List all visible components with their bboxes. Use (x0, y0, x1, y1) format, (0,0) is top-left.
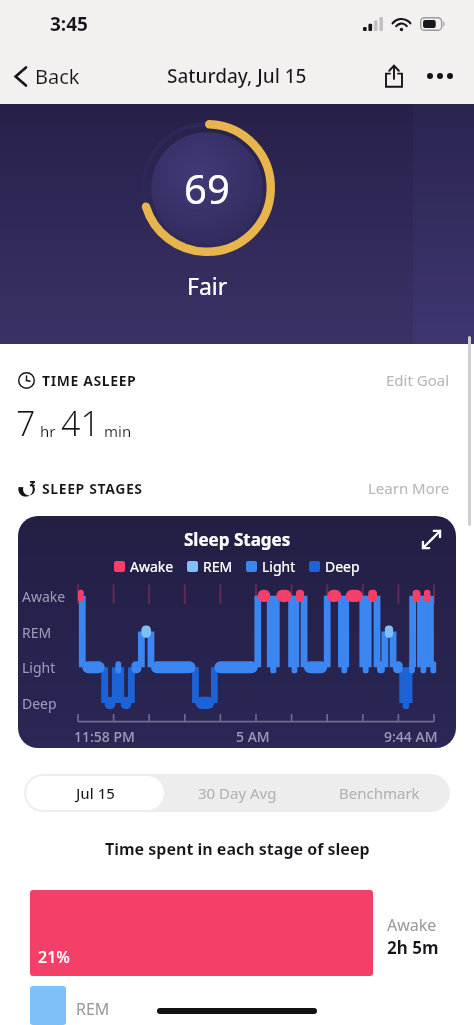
staticText: Fair (187, 270, 228, 301)
button[interactable]: Learn More (364, 474, 454, 502)
button[interactable]: Share (372, 54, 416, 98)
staticText: Awake (22, 587, 66, 606)
staticText: 11:58 PM (74, 727, 135, 746)
staticText: 41 (61, 400, 100, 446)
staticText: 9:44 AM (384, 727, 438, 746)
staticText: Learn More (368, 478, 450, 498)
staticText: Back (35, 63, 80, 90)
staticText: TIME ASLEEP (42, 371, 137, 390)
staticText: REM (76, 998, 110, 1020)
button[interactable]: Back (0, 55, 94, 98)
staticText: 7 (16, 400, 36, 446)
button[interactable]: Jul 15 (26, 776, 164, 810)
staticText: Time spent in each stage of sleep (105, 838, 370, 860)
staticText: min (104, 421, 132, 441)
staticText: Saturday, Jul 15 (167, 63, 307, 89)
staticText: 3:45 (50, 11, 88, 37)
staticText: Jul 15 (76, 783, 115, 803)
button[interactable]: REM (0, 986, 474, 1025)
staticText: Sleep Stages (184, 528, 291, 551)
staticText: SLEEP STAGES (42, 479, 143, 498)
button[interactable]: Benchmark (308, 774, 450, 812)
staticText: REM (203, 557, 233, 576)
button[interactable]: Edit Goal (382, 366, 454, 394)
staticText: Deep (325, 557, 360, 576)
staticText: Light (22, 658, 56, 677)
staticText: 5 AM (236, 727, 270, 746)
button[interactable]: More options (416, 52, 464, 100)
button[interactable]: Sleep Stages (18, 516, 456, 748)
staticText: 69 (184, 161, 230, 215)
staticText: REM (22, 623, 52, 642)
staticText: 2h 5m (387, 936, 439, 959)
button[interactable]: 30 Day Avg (166, 774, 308, 812)
staticText: Deep (22, 694, 57, 713)
staticText: 30 Day Avg (198, 783, 277, 803)
staticText: Light (262, 557, 296, 576)
staticText: hr (40, 421, 56, 441)
staticText: 21% (38, 946, 70, 968)
button[interactable]: Expand chart (414, 522, 448, 556)
staticText: Awake (130, 557, 174, 576)
staticText: Awake (387, 914, 437, 936)
staticText: Edit Goal (386, 370, 450, 390)
button[interactable]: 21% (0, 890, 474, 976)
staticText: Benchmark (339, 783, 420, 803)
